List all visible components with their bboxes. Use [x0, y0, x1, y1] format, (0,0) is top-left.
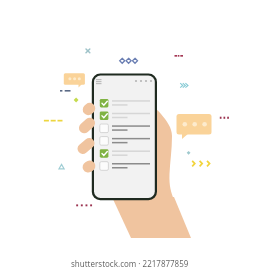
button[interactable] — [0, 0, 260, 280]
